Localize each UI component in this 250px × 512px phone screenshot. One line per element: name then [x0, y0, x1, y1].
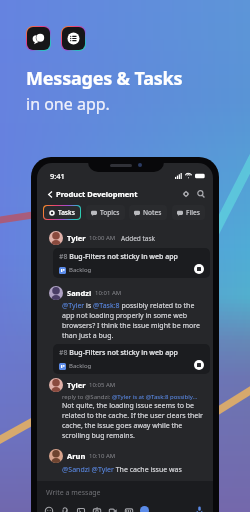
- button[interactable]: Send: [140, 506, 149, 512]
- staticText: in one app.: [26, 93, 110, 115]
- button[interactable]: #8 Bug-Filters not sticky in web app: [53, 344, 210, 374]
- button[interactable]: Search: [195, 188, 207, 200]
- staticText: reply to @Sandzi: @Tyler is at @Task:8 p…: [62, 393, 198, 401]
- staticText: Backlog: [69, 362, 92, 370]
- staticText: #8 Bug-Filters not sticky in web app: [59, 252, 178, 262]
- button[interactable]: Notes: [129, 205, 167, 220]
- button[interactable]: Emoji: [44, 506, 54, 512]
- button[interactable]: Files: [172, 205, 205, 220]
- button[interactable]: GIF: [124, 506, 134, 512]
- staticText: Tyler: [67, 233, 86, 243]
- staticText: 10:05 AM: [89, 381, 116, 389]
- staticText: 10:00 AM: [89, 234, 116, 242]
- staticText: Arun: [67, 451, 86, 461]
- button[interactable]: Image: [76, 506, 86, 512]
- button[interactable]: Attach file: [60, 506, 70, 512]
- button[interactable]: Voice message: [194, 505, 205, 512]
- staticText: #8 Bug-Filters not sticky in web app: [59, 348, 178, 358]
- staticText: @Tyler is @Task:8 possibly related to th…: [62, 301, 203, 341]
- button[interactable]: Video: [108, 506, 118, 512]
- button[interactable]: Settings: [180, 188, 192, 200]
- staticText: 10:10 AM: [89, 452, 116, 460]
- button[interactable]: Camera: [92, 506, 102, 512]
- staticText: Tasks: [58, 208, 75, 217]
- button[interactable]: Topics: [86, 205, 125, 220]
- staticText: Sandzi: [67, 288, 92, 298]
- staticText: Not quite, the loading issue seems to be…: [62, 401, 207, 441]
- button[interactable]: Tasks: [44, 206, 80, 219]
- staticText: Files: [186, 208, 200, 217]
- staticText: Added task: [121, 234, 156, 243]
- staticText: Product Development: [56, 189, 138, 199]
- staticText: Backlog: [69, 266, 92, 274]
- staticText: Write a message: [46, 488, 101, 498]
- button[interactable]: Back: [45, 190, 54, 199]
- staticText: Messages & Tasks: [26, 66, 183, 91]
- staticText: Notes: [143, 208, 162, 217]
- staticText: Tyler: [67, 380, 86, 390]
- button[interactable]: Tasks: [62, 27, 85, 50]
- button[interactable]: Messages: [27, 27, 50, 50]
- staticText: Topics: [100, 208, 120, 217]
- staticText: @Sandzi @Tyler The cache issue was: [62, 465, 182, 475]
- staticText: 10:01 AM: [95, 289, 122, 297]
- staticText: 9:41: [50, 171, 65, 181]
- button[interactable]: #8 Bug-Filters not sticky in web app: [53, 248, 210, 278]
